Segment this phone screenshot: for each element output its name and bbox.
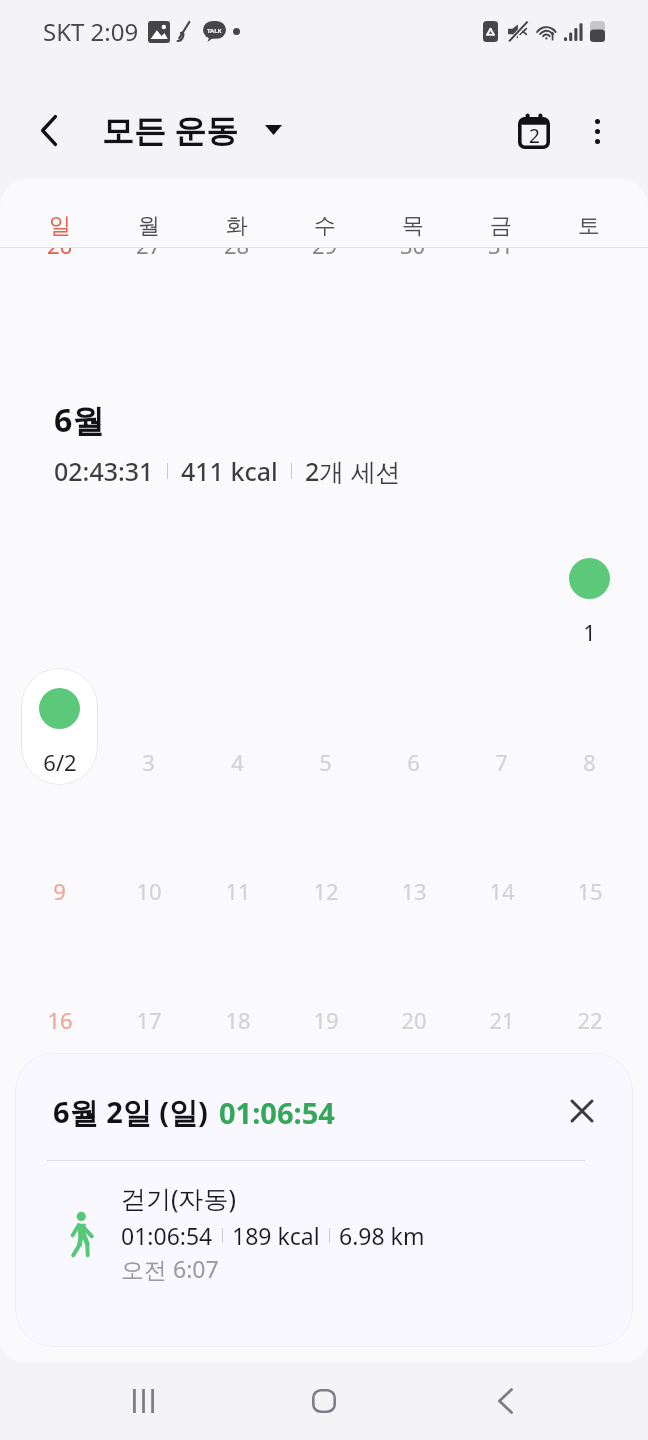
staticText: 28 [224,230,250,260]
staticText: 14 [489,876,515,906]
button[interactable]: Back [467,1363,543,1439]
button[interactable]: 14 [463,797,540,914]
button[interactable]: 11 [199,797,276,914]
staticText: 9 [53,876,66,906]
staticText: 2 [529,123,540,149]
button[interactable]: 4 [199,668,276,785]
button[interactable]: 18 [199,926,276,1043]
staticText: 26 [47,230,73,260]
staticText: 17 [136,1005,162,1035]
button[interactable]: 9 [21,797,98,914]
button[interactable]: 19 [287,926,364,1043]
staticText: 31 [488,230,514,260]
staticText: 27 [136,230,162,260]
button[interactable]: 1 [551,538,628,655]
staticText: 2개 세션 [305,454,401,488]
staticText: 411 kcal [181,454,278,488]
button[interactable]: 모든 운동 [102,98,282,162]
button[interactable]: 5 [287,668,364,785]
button[interactable]: 12 [287,797,364,914]
staticText: 화 [226,212,248,240]
button[interactable]: Recent apps [105,1363,181,1439]
staticText: 02:43:31 [54,454,154,488]
staticText: 10 [136,876,162,906]
button[interactable]: 6/2 [21,668,98,785]
staticText: 13 [401,876,427,906]
button[interactable]: 8 [551,668,628,785]
staticText: 1 [583,617,596,647]
staticText: 월 [138,212,160,240]
button[interactable]: Close [557,1086,607,1136]
staticText: 6월 [54,398,105,442]
staticText: 21 [489,1005,515,1035]
staticText: 01:06:54 [121,1220,213,1251]
staticText: 29 [312,230,338,260]
staticText: 5 [319,747,332,777]
button[interactable]: 17 [110,926,187,1043]
button[interactable]: 10 [110,797,187,914]
button[interactable]: 22 [551,926,628,1043]
staticText: 30 [400,230,426,260]
staticText: 토 [578,212,600,240]
button[interactable]: 15 [551,797,628,914]
staticText: SKT 2:09 [43,15,139,48]
staticText: 22 [577,1005,603,1035]
button[interactable]: 13 [375,797,452,914]
button[interactable]: Calendar [502,100,566,164]
staticText: 01:06:54 [219,1093,335,1132]
staticText: 19 [313,1005,339,1035]
button[interactable]: 6 [375,668,452,785]
button[interactable]: More options [567,101,627,161]
button[interactable]: 21 [463,926,540,1043]
staticText: 걷기(자동) [121,1181,237,1215]
button[interactable] [31,1173,617,1333]
staticText: 20 [401,1005,427,1035]
staticText: 3 [142,747,155,777]
staticText: 일 [49,212,71,240]
staticText: 18 [225,1005,251,1035]
staticText: 목 [402,212,424,240]
staticText: 6 [407,747,420,777]
staticText: 금 [490,212,512,240]
button[interactable]: 20 [375,926,452,1043]
staticText: 7 [495,747,508,777]
staticText: 189 kcal [232,1220,320,1251]
staticText: 수 [314,212,336,240]
button[interactable]: 16 [21,926,98,1043]
staticText: 8 [583,747,596,777]
staticText: 오전 6:07 [121,1253,219,1284]
staticText: 15 [577,876,603,906]
staticText: 모든 운동 [102,108,239,152]
staticText: 4 [231,747,244,777]
button[interactable]: 3 [110,668,187,785]
staticText: 6/2 [43,747,77,777]
staticText: 12 [313,876,339,906]
staticText: 6월 2일 (일) [53,1092,208,1132]
staticText: 16 [47,1005,73,1035]
staticText: TALK [207,27,222,35]
button[interactable]: Home [286,1363,362,1439]
staticText: 11 [225,876,251,906]
button[interactable]: Back [13,94,85,166]
staticText: 6.98 km [339,1220,425,1251]
